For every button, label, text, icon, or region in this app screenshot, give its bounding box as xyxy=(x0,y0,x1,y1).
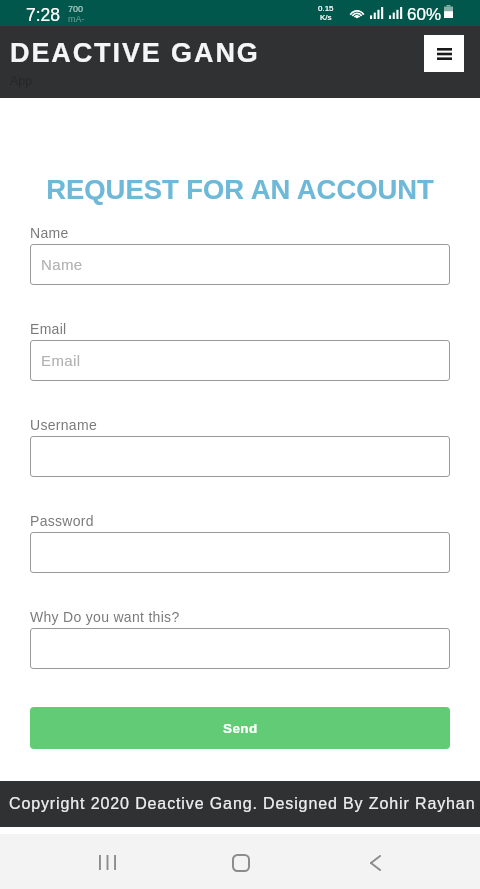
staticText: K/s xyxy=(320,13,332,22)
staticText: 60% xyxy=(407,5,442,24)
staticText: DEACTIVE GANG xyxy=(10,38,260,68)
staticText: 700 xyxy=(68,4,84,14)
staticText: Send xyxy=(223,721,258,736)
button[interactable]: Home xyxy=(201,835,281,889)
staticText: Email xyxy=(41,352,81,369)
staticText: Name xyxy=(30,225,69,241)
staticText: mA- xyxy=(68,14,85,24)
staticText: Username xyxy=(30,417,97,433)
button[interactable]: Menu xyxy=(424,35,464,72)
staticText: App xyxy=(10,74,33,88)
button[interactable]: Recent apps xyxy=(67,835,147,889)
button[interactable]: Send xyxy=(30,707,450,749)
staticText: REQUEST FOR AN ACCOUNT xyxy=(0,174,480,205)
staticText: Name xyxy=(41,256,83,273)
staticText: 7:28 xyxy=(26,5,61,25)
staticText: Email xyxy=(30,321,67,337)
staticText: 0.15 xyxy=(318,4,334,13)
staticText: Copyright 2020 Deactive Gang. Designed B… xyxy=(9,795,476,813)
staticText: Why Do you want this? xyxy=(30,609,180,625)
button[interactable]: Back xyxy=(335,835,415,889)
staticText: Password xyxy=(30,513,94,529)
